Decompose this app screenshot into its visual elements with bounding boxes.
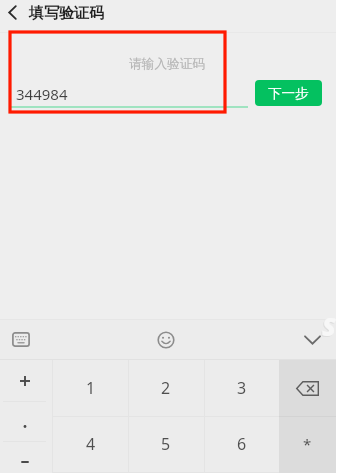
button[interactable]: Backspace [279, 360, 336, 416]
button[interactable]: 1 [53, 360, 128, 416]
staticText: 5 [161, 433, 171, 455]
button[interactable]: * [279, 416, 336, 472]
staticText: 下一步 [268, 85, 309, 102]
button[interactable] [0, 441, 52, 473]
staticText: 填写验证码 [29, 4, 104, 23]
staticText: 2 [161, 377, 171, 399]
button[interactable] [0, 401, 52, 442]
staticText: * [303, 434, 312, 454]
staticText: 3 [237, 377, 247, 399]
button[interactable]: 下一步 [255, 80, 322, 106]
button[interactable] [0, 360, 52, 401]
staticText: S [322, 309, 336, 343]
button[interactable]: 6 [204, 416, 279, 472]
staticText: S [321, 310, 335, 344]
staticText: 1 [86, 377, 96, 399]
button[interactable]: 5 [128, 416, 203, 472]
staticText: 344984 [16, 84, 68, 104]
button[interactable]: Hide keyboard [296, 324, 328, 356]
button[interactable]: 2 [128, 360, 203, 416]
button[interactable]: 3 [204, 360, 279, 416]
button[interactable]: 4 [53, 416, 128, 472]
staticText: 请输入验证码 [129, 56, 206, 72]
staticText: 6 [237, 433, 247, 455]
button[interactable]: Back [0, 0, 24, 24]
staticText: 4 [86, 433, 96, 455]
button[interactable]: Emoji [150, 324, 182, 356]
button[interactable]: Keyboard [5, 323, 37, 355]
